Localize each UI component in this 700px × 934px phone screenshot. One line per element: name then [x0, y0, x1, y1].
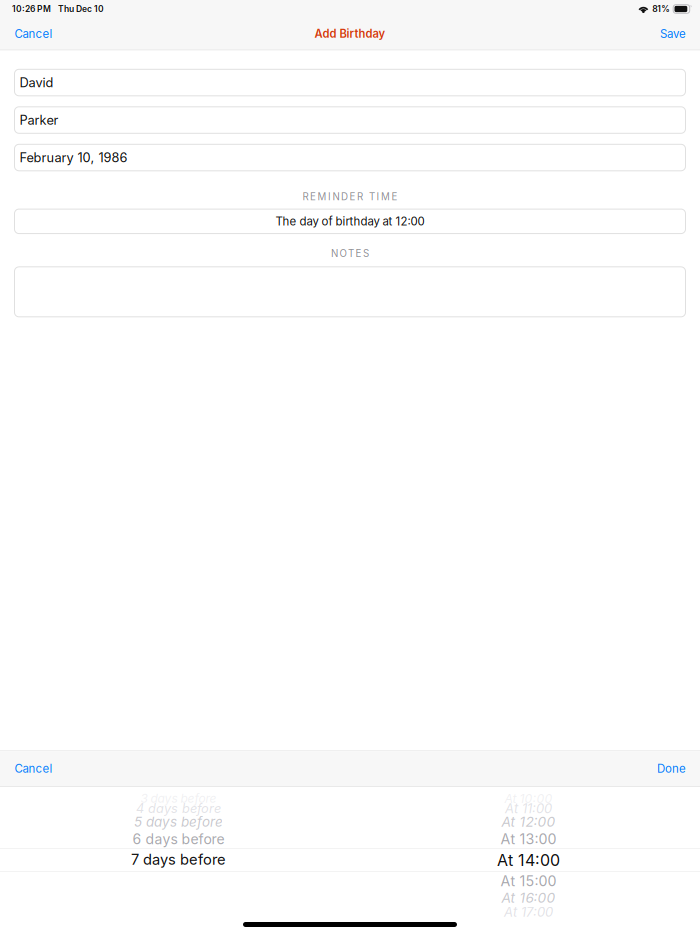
staticText: At 12:00: [501, 813, 555, 830]
staticText: 81%: [652, 4, 670, 14]
staticText: At 17:00: [504, 904, 553, 920]
staticText: 10:26 PM: [12, 4, 51, 14]
staticText: At 14:00: [497, 851, 560, 870]
button[interactable]: Parker: [14, 107, 685, 133]
staticText: NOTES: [331, 248, 369, 259]
staticText: At 10:00: [504, 791, 552, 806]
staticText: Done: [657, 762, 686, 776]
staticText: 3 days before: [140, 791, 216, 806]
button[interactable]: Done: [657, 751, 686, 786]
staticText: David: [19, 75, 53, 90]
staticText: Parker: [19, 112, 58, 128]
staticText: At 11:00: [505, 800, 552, 816]
button[interactable]: February 10, 1986: [14, 144, 685, 171]
staticText: 5 days before: [134, 814, 223, 830]
button[interactable]: Cancel: [14, 751, 52, 786]
button[interactable]: Cancel: [14, 18, 52, 49]
staticText: At 13:00: [500, 830, 556, 848]
staticText: The day of birthday at 12:00: [275, 214, 424, 228]
button[interactable]: Save: [660, 18, 686, 49]
staticText: Cancel: [14, 762, 52, 776]
button[interactable]: David: [14, 69, 685, 96]
staticText: February 10, 1986: [19, 150, 127, 165]
staticText: 6 days before: [132, 831, 224, 848]
staticText: At 15:00: [500, 872, 556, 890]
staticText: 4 days before: [136, 801, 221, 816]
staticText: Add Birthday: [314, 27, 385, 41]
staticText: Cancel: [14, 27, 52, 41]
button[interactable]: The day of birthday at 12:00: [14, 209, 685, 234]
staticText: 7 days before: [131, 850, 226, 868]
staticText: Save: [660, 27, 686, 41]
staticText: Thu Dec 10: [58, 4, 104, 14]
staticText: REMINDER TIME: [302, 191, 397, 203]
staticText: At 16:00: [501, 889, 555, 906]
button[interactable]: [14, 267, 685, 317]
